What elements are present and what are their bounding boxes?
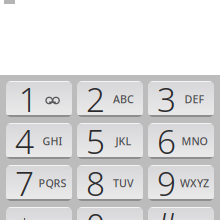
staticText: 7 [15,161,34,205]
staticText: 3 [157,77,176,121]
button[interactable]: # [148,207,214,220]
staticText: GHI [42,134,62,148]
staticText: JKL [115,134,131,148]
staticText: 6 [157,119,176,163]
staticText: # [155,201,178,220]
button[interactable]: 8 [77,165,143,201]
button[interactable]: 4 [6,123,72,159]
button[interactable]: 0 [77,207,143,220]
button[interactable]: 1 [6,81,72,117]
button[interactable]: 9 [148,165,214,201]
staticText: DEF [184,92,204,106]
staticText: 4 [15,119,34,163]
staticText: MNO [181,134,207,148]
staticText: 0 [86,203,105,220]
staticText: ∗ [13,204,36,220]
staticText: 5 [86,119,105,163]
staticText: 9 [157,161,176,205]
staticText: PQRS [38,176,66,190]
staticText: ABC [113,92,134,106]
staticText: 8 [86,161,105,205]
button[interactable]: 3 [148,81,214,117]
button[interactable]: 7 [6,165,72,201]
button[interactable]: 6 [148,123,214,159]
button[interactable]: ∗ [6,207,72,220]
staticText: 2 [86,77,105,121]
staticText: TUV [113,176,134,190]
staticText: 1 [19,77,38,121]
staticText: WXYZ [180,176,209,190]
button[interactable]: 2 [77,81,143,117]
button[interactable]: 5 [77,123,143,159]
